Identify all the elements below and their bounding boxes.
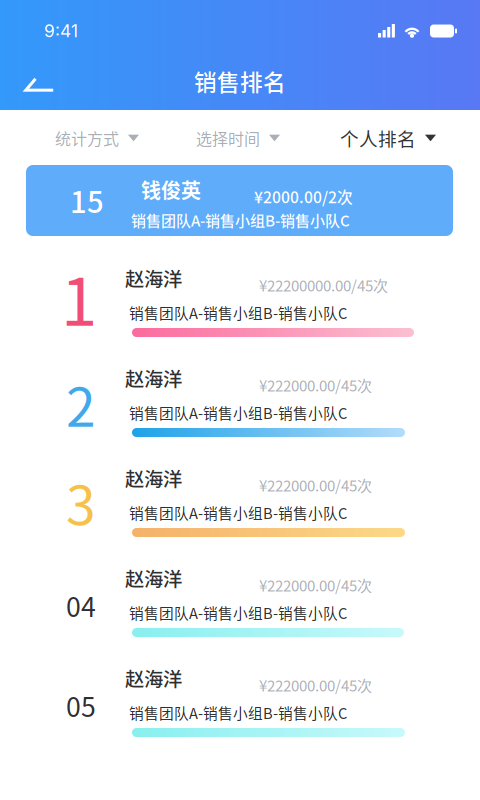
staticText: 04 bbox=[66, 586, 96, 625]
staticText: ¥222000.00/45次 bbox=[259, 674, 372, 696]
staticText: 15 bbox=[70, 179, 104, 221]
button[interactable]: 选择时间 bbox=[0, 110, 104, 156]
staticText: 赵海洋 bbox=[125, 464, 182, 492]
staticText: ¥2000.00/2次 bbox=[254, 185, 353, 208]
staticText: ¥22200000.00/45次 bbox=[259, 274, 388, 296]
staticText: 销售团队A-销售小组B-销售小队C bbox=[129, 702, 347, 723]
button[interactable]: 15 bbox=[0, 156, 480, 250]
button[interactable]: 2 bbox=[0, 350, 480, 450]
staticText: 销售团队A-销售小组B-销售小队C bbox=[131, 209, 350, 231]
staticText: 9:41 bbox=[44, 20, 78, 41]
staticText: 赵海洋 bbox=[125, 364, 182, 392]
staticText: 销售排名 bbox=[194, 65, 286, 97]
button[interactable]: 1 bbox=[0, 250, 480, 350]
button[interactable]: 统计方式 bbox=[0, 110, 104, 156]
staticText: 2 bbox=[66, 365, 96, 442]
staticText: 销售团队A-销售小组B-销售小队C bbox=[129, 502, 347, 523]
staticText: 赵海洋 bbox=[125, 664, 182, 692]
staticText: 销售团队A-销售小组B-销售小队C bbox=[129, 402, 347, 423]
button[interactable]: 个人排名 bbox=[0, 110, 116, 156]
staticText: 统计方式 bbox=[55, 126, 119, 150]
staticText: 个人排名 bbox=[340, 124, 416, 151]
staticText: 1 bbox=[61, 250, 97, 345]
button[interactable]: 05 bbox=[0, 650, 480, 750]
button[interactable]: 04 bbox=[0, 550, 480, 650]
staticText: 选择时间 bbox=[196, 126, 260, 150]
staticText: ¥222000.00/45次 bbox=[259, 474, 372, 496]
staticText: 销售团队A-销售小组B-销售小队C bbox=[129, 302, 347, 323]
staticText: ¥222000.00/45次 bbox=[259, 374, 372, 396]
staticText: 赵海洋 bbox=[125, 264, 182, 292]
staticText: 销售团队A-销售小组B-销售小队C bbox=[129, 602, 347, 623]
staticText: 钱俊英 bbox=[141, 175, 201, 204]
staticText: 赵海洋 bbox=[125, 564, 182, 592]
button[interactable]: 返回 bbox=[0, 61, 71, 101]
staticText: ¥222000.00/45次 bbox=[259, 574, 372, 596]
button[interactable]: 3 bbox=[0, 450, 480, 550]
staticText: 3 bbox=[66, 463, 96, 540]
staticText: 05 bbox=[66, 686, 96, 725]
